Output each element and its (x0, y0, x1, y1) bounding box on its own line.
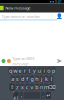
button[interactable]: d (20, 75, 24, 82)
button[interactable]: y (32, 67, 36, 74)
staticText: v (30, 84, 33, 91)
button[interactable]: !#1 (13, 92, 18, 99)
staticText: , (21, 92, 22, 99)
button[interactable]: e (18, 67, 22, 74)
button[interactable]: ↵ (45, 92, 51, 99)
staticText: ↵ (46, 92, 50, 98)
button[interactable]: b (35, 84, 39, 91)
staticText: w (13, 67, 17, 74)
button[interactable]: ⇧ (9, 84, 15, 91)
staticText: j (41, 75, 42, 82)
button[interactable]: . (41, 92, 45, 99)
staticText: y (33, 67, 36, 74)
button[interactable]: , (19, 92, 23, 99)
staticText: l (51, 75, 52, 82)
button[interactable]: n (39, 84, 44, 91)
button[interactable]: s (15, 75, 20, 82)
button[interactable]: u (37, 67, 41, 74)
staticText: c (26, 84, 29, 91)
button[interactable]: i (42, 67, 46, 74)
staticText: p (52, 67, 55, 74)
staticText: r (24, 67, 26, 74)
button[interactable]: ⌫ (49, 84, 55, 91)
staticText: 👤 (56, 13, 63, 20)
staticText: 9:41 (55, 0, 62, 3)
button[interactable]: f (25, 75, 29, 82)
staticText: z (16, 84, 19, 91)
staticText: ⇧ (10, 84, 14, 90)
staticText: g (30, 75, 33, 82)
button[interactable]: l (49, 75, 53, 82)
button[interactable]: p (51, 67, 56, 74)
button[interactable]: g (30, 75, 34, 82)
button[interactable]: a (11, 75, 15, 82)
staticText: Type an SMS message (12, 56, 34, 66)
button[interactable]: q (8, 67, 12, 74)
staticText: f (26, 75, 28, 82)
staticText: s (16, 75, 19, 82)
staticText: t (29, 67, 31, 74)
button[interactable]: z (15, 84, 20, 91)
staticText: Type name or number (1, 14, 40, 19)
staticText: k (45, 75, 48, 82)
button[interactable]: v (30, 84, 34, 91)
staticText: e (18, 67, 21, 74)
button[interactable]: o (47, 67, 51, 74)
button[interactable]: c (25, 84, 29, 91)
button[interactable]: r (23, 67, 27, 74)
staticText: m (44, 84, 49, 91)
button[interactable]: Choose contact (56, 13, 62, 19)
staticText: !#1 (13, 90, 18, 100)
button[interactable]: Emoji (7, 59, 11, 63)
staticText: b (35, 84, 38, 91)
staticText: a (11, 75, 14, 82)
button[interactable]: t (27, 67, 32, 74)
staticText: h (35, 75, 38, 82)
button[interactable]: k (44, 75, 48, 82)
button[interactable]: Add attachment (1, 59, 5, 63)
button[interactable]: x (20, 84, 24, 91)
staticText: . (42, 92, 43, 99)
button[interactable]: j (39, 75, 44, 82)
button[interactable]: w (13, 67, 17, 74)
staticText: d (21, 75, 24, 82)
staticText: u (38, 67, 41, 74)
button[interactable]: h (35, 75, 39, 82)
button[interactable]: Send (56, 58, 62, 64)
staticText: o (47, 67, 50, 74)
staticText: q (9, 67, 12, 74)
staticText: ⌫ (48, 84, 56, 90)
staticText: n (40, 84, 43, 91)
staticText: New message (5, 5, 30, 11)
staticText: x (21, 84, 24, 91)
button[interactable]: m (44, 84, 48, 91)
